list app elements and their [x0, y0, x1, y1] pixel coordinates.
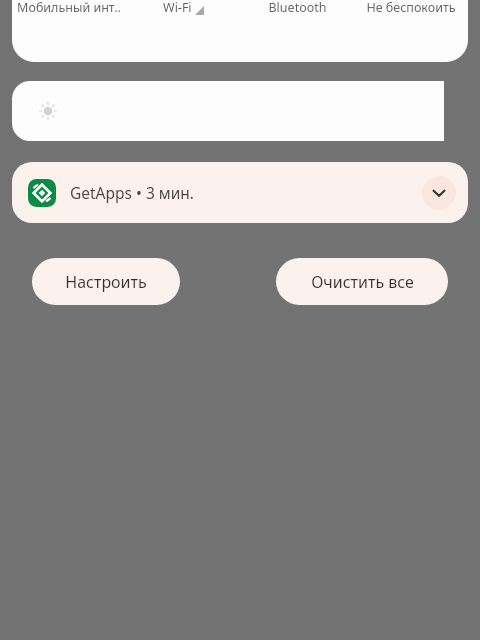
button[interactable]: Мобильный инт.. [12, 0, 126, 16]
button[interactable]: Развернуть [422, 176, 456, 210]
staticText: Настроить [65, 271, 147, 293]
staticText: Мобильный инт.. [17, 0, 121, 16]
staticText: Wi-Fi [163, 0, 192, 16]
staticText: Не беспокоить [366, 0, 456, 16]
button[interactable]: Очистить все [276, 258, 448, 305]
button[interactable]: Bluetooth [240, 0, 354, 16]
button[interactable]: Настроить [32, 258, 180, 305]
button[interactable]: Яркость [12, 81, 468, 141]
staticText: Очистить все [311, 271, 414, 293]
button[interactable]: Wi-Fi [126, 0, 240, 16]
button[interactable]: Не беспокоить [354, 0, 468, 16]
staticText: GetApps • 3 мин. [70, 182, 195, 203]
staticText: Bluetooth [268, 0, 327, 16]
button[interactable]: GetApps • 3 мин. [12, 162, 468, 223]
